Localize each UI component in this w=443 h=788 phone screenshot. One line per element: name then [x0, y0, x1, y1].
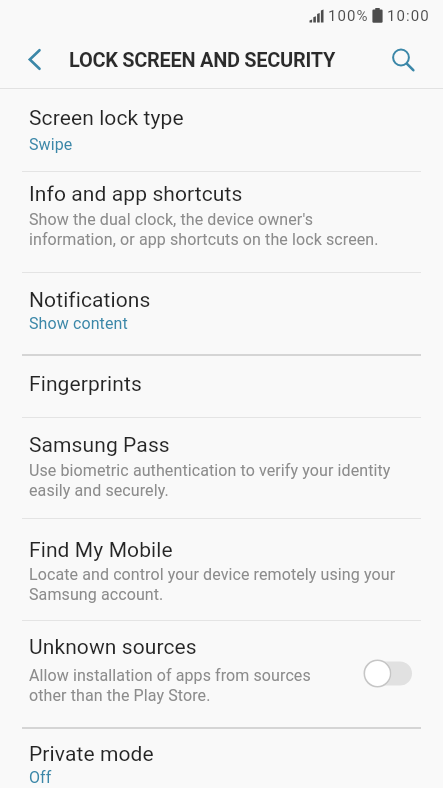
staticText: Off	[29, 768, 52, 787]
staticText: Notifications	[29, 288, 151, 313]
staticText: Unknown sources	[29, 635, 197, 660]
staticText: 10:00	[387, 7, 430, 25]
staticText: Private mode	[29, 742, 154, 767]
staticText: Use biometric authentication to verify y…	[29, 461, 391, 500]
staticText: Screen lock type	[29, 106, 184, 131]
staticText: LOCK SCREEN AND SECURITY	[69, 48, 335, 71]
staticText: Locate and control your device remotely …	[29, 565, 396, 604]
button[interactable]: Samsung Pass	[0, 418, 443, 518]
button[interactable]: Notifications	[0, 273, 443, 354]
staticText: Allow installation of apps from sources …	[29, 666, 311, 705]
button[interactable]: Fingerprints	[0, 356, 443, 417]
button[interactable]	[0, 28, 58, 88]
staticText: Info and app shortcuts	[29, 182, 243, 207]
staticText: Fingerprints	[29, 372, 142, 397]
staticText: Swipe	[29, 135, 73, 154]
staticText: Find My Mobile	[29, 538, 173, 563]
staticText: 100%	[328, 7, 369, 25]
button[interactable]: Screen lock type	[0, 89, 443, 171]
button[interactable]: Private mode	[0, 729, 443, 787]
staticText: Samsung Pass	[29, 433, 170, 458]
button[interactable]: Find My Mobile	[0, 519, 443, 620]
button[interactable]	[387, 28, 443, 88]
button[interactable]: Info and app shortcuts	[0, 172, 443, 272]
staticText: Show the dual clock, the device owner's …	[29, 210, 379, 249]
button[interactable]: Unknown sources	[0, 621, 443, 727]
staticText: Show content	[29, 314, 128, 333]
